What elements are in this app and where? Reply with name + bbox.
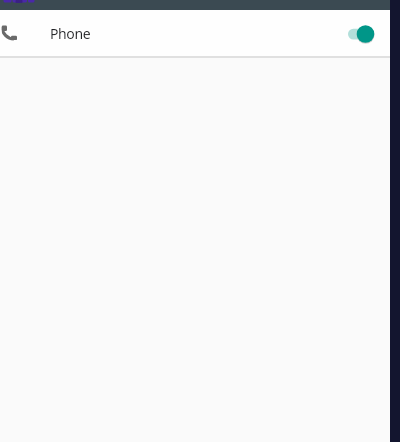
button[interactable]: [346, 22, 378, 46]
staticText: Phone: [50, 24, 91, 43]
button[interactable]: Phone: [0, 10, 390, 56]
